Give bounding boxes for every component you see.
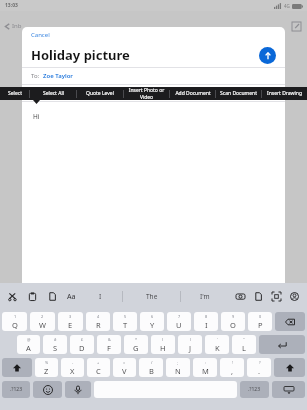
button[interactable]: Insert Drawing — [262, 87, 307, 100]
button[interactable]: Shift right — [274, 358, 305, 377]
button[interactable]: Insert Photo or Video — [124, 87, 169, 100]
button[interactable]: ' — [205, 335, 229, 354]
staticText: .?123 — [10, 386, 23, 393]
button[interactable]: ( — [151, 335, 175, 354]
button[interactable]: Compose — [290, 20, 302, 32]
button[interactable]: & — [97, 335, 121, 354]
button[interactable]: @ — [17, 335, 40, 354]
staticText: C — [96, 366, 101, 376]
button[interactable]: .?123 — [240, 381, 269, 398]
button[interactable]: I'm — [181, 283, 229, 310]
staticText: W — [39, 320, 46, 330]
button[interactable]: Back to Inbox — [4, 22, 22, 30]
button[interactable]: Add Document — [170, 87, 215, 100]
button[interactable]: 5 — [113, 312, 137, 331]
staticText: S — [53, 343, 58, 353]
button[interactable]: - — [61, 358, 84, 377]
button[interactable]: 7 — [167, 312, 191, 331]
staticText: . — [258, 366, 261, 376]
button[interactable]: * — [124, 335, 148, 354]
button[interactable]: Backspace — [275, 312, 305, 331]
button[interactable]: 2 — [30, 312, 55, 331]
button[interactable]: To: — [31, 68, 285, 84]
staticText: , — [231, 366, 234, 376]
button[interactable]: ! — [220, 358, 244, 377]
staticText: Inb — [12, 22, 22, 30]
button[interactable]: £ — [70, 335, 94, 354]
staticText: Insert Drawing — [267, 90, 302, 97]
staticText: £ — [81, 337, 84, 342]
button[interactable]: Emoji — [33, 381, 62, 398]
button[interactable]: 6 — [140, 312, 164, 331]
button[interactable]: 0 — [248, 312, 272, 331]
staticText: To: — [31, 72, 40, 80]
button[interactable]: Hide keyboard — [272, 381, 305, 398]
staticText: + — [97, 360, 100, 365]
button[interactable]: 3 — [58, 312, 83, 331]
staticText: : — [205, 360, 207, 365]
button[interactable]: .?123 — [2, 381, 30, 398]
staticText: T — [123, 320, 128, 330]
button[interactable]: 1 — [2, 312, 27, 331]
button[interactable]: Cut — [6, 290, 19, 303]
staticText: Aa — [67, 292, 76, 302]
button[interactable]: Send — [259, 47, 276, 64]
button[interactable]: Copy — [46, 290, 59, 303]
button[interactable]: Document — [252, 290, 265, 303]
button[interactable]: Dictate — [65, 381, 91, 398]
button[interactable]: 4 — [86, 312, 110, 331]
button[interactable]: = — [113, 358, 136, 377]
staticText: 9 — [232, 314, 235, 319]
staticText: 5 — [124, 314, 127, 319]
button[interactable]: Select All — [30, 87, 76, 100]
staticText: % — [45, 360, 49, 365]
staticText: 7 — [178, 314, 181, 319]
staticText: " — [243, 337, 245, 342]
staticText: Select All — [43, 90, 64, 97]
button[interactable]: Cc/Bcc, From: — [31, 85, 285, 101]
staticText: D — [79, 343, 85, 353]
staticText: ; — [177, 360, 179, 365]
button[interactable]: ) — [178, 335, 202, 354]
button[interactable]: I — [78, 283, 122, 310]
button[interactable]: Account — [288, 290, 301, 303]
button[interactable]: Cancel — [31, 31, 50, 39]
staticText: G — [133, 343, 139, 353]
staticText: Quote Level — [86, 90, 114, 97]
staticText: H — [160, 343, 166, 353]
staticText: - — [72, 360, 74, 365]
button[interactable]: Paste — [26, 290, 39, 303]
staticText: * — [135, 337, 138, 342]
button[interactable]: Select — [0, 87, 29, 100]
staticText: I'm — [200, 292, 210, 301]
button[interactable]: Scan — [270, 290, 283, 303]
button[interactable]: Return — [259, 335, 305, 354]
staticText: ) — [190, 337, 192, 342]
button[interactable]: Format — [65, 290, 78, 303]
staticText: O — [230, 320, 236, 330]
button[interactable]: / — [139, 358, 163, 377]
staticText: N — [175, 366, 181, 376]
button[interactable]: Camera — [234, 290, 247, 303]
staticText: ' — [217, 337, 218, 342]
button[interactable]: ? — [247, 358, 271, 377]
staticText: / — [151, 360, 153, 365]
button[interactable]: 9 — [221, 312, 245, 331]
staticText: 2 — [41, 314, 44, 319]
button[interactable]: % — [35, 358, 58, 377]
button[interactable]: 8 — [194, 312, 218, 331]
staticText: U — [176, 320, 182, 330]
button[interactable]: The — [123, 283, 180, 310]
button[interactable]: Shift — [2, 358, 32, 377]
button[interactable]: # — [43, 335, 67, 354]
staticText: K — [215, 343, 220, 353]
staticText: Holiday picture — [31, 46, 259, 64]
button[interactable]: : — [193, 358, 217, 377]
staticText: Zoe Taylor — [43, 72, 73, 80]
button[interactable]: ; — [166, 358, 190, 377]
button[interactable]: + — [87, 358, 110, 377]
button[interactable]: " — [232, 335, 256, 354]
button[interactable]: Quote Level — [77, 87, 123, 100]
button[interactable]: Scan Document — [216, 87, 261, 100]
